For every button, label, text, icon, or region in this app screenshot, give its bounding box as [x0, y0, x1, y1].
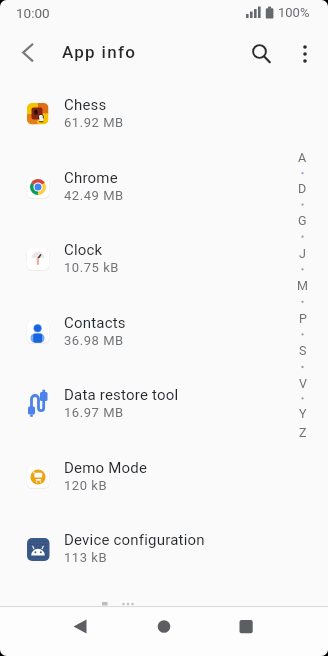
staticText: Chrome [64, 169, 118, 187]
button[interactable] [289, 38, 321, 70]
staticText: Chess [64, 96, 107, 114]
button[interactable] [64, 611, 96, 643]
staticText: 113 kB [64, 550, 108, 565]
staticText: Clock [64, 241, 103, 259]
button[interactable]: Chrome [0, 153, 328, 225]
button[interactable] [230, 611, 262, 643]
staticText: V [299, 376, 307, 391]
button[interactable]: Contacts [0, 298, 328, 370]
staticText: 10:00 [16, 5, 50, 21]
staticText: App info [62, 42, 137, 62]
staticText: 100% [278, 5, 310, 20]
button[interactable]: Demo Mode [0, 443, 328, 515]
staticText: A [298, 150, 307, 165]
staticText: 61.92 MB [64, 115, 124, 130]
button[interactable] [8, 39, 40, 71]
staticText: M [297, 278, 308, 293]
button[interactable] [244, 38, 276, 70]
staticText: Z [299, 425, 307, 440]
staticText: J [299, 246, 306, 261]
staticText: D [298, 181, 307, 196]
staticText: 42.49 MB [64, 188, 124, 203]
staticText: Device configuration [64, 531, 205, 549]
staticText: P [299, 311, 307, 326]
staticText: 10.75 kB [64, 260, 119, 275]
staticText: Demo Mode [64, 459, 148, 477]
button[interactable] [148, 611, 180, 643]
button[interactable]: Chess [0, 80, 328, 152]
staticText: Y [299, 406, 307, 421]
staticText: 16.97 MB [64, 405, 124, 420]
staticText: Data restore tool [64, 386, 179, 404]
staticText: S [299, 343, 307, 358]
staticText: G [298, 213, 307, 228]
staticText: 120 kB [64, 478, 108, 493]
staticText: 36.98 MB [64, 333, 124, 348]
button[interactable]: Data restore tool [0, 370, 328, 442]
button[interactable]: Device configuration [0, 515, 328, 587]
staticText: Contacts [64, 314, 126, 332]
button[interactable]: Clock [0, 225, 328, 297]
